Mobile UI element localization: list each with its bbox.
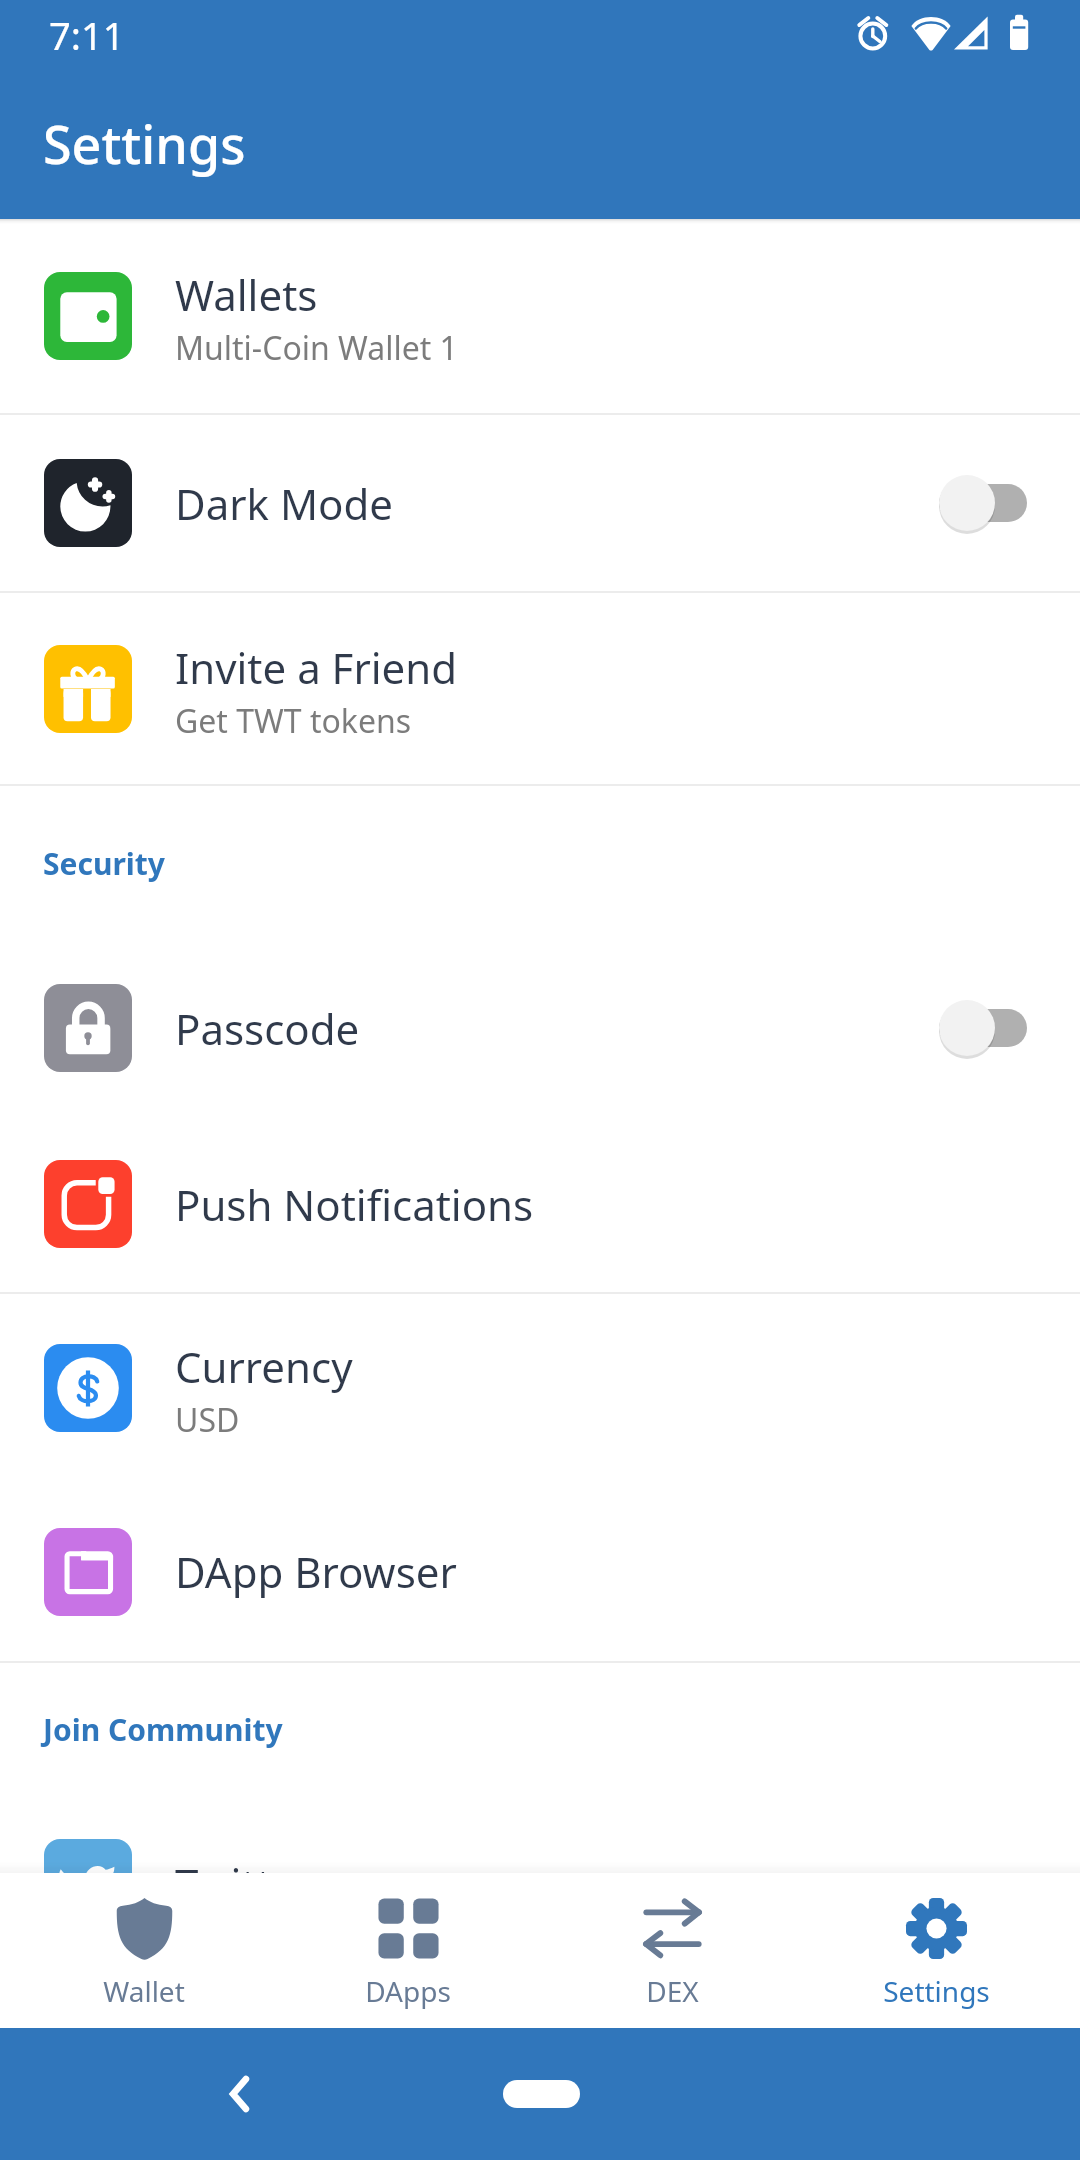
staticText: DEX	[646, 1972, 699, 2010]
button[interactable]: Invite a Friend	[0, 593, 1080, 784]
button[interactable]: Wallet	[12, 1873, 276, 2028]
staticText: DApp Browser	[175, 1543, 457, 1600]
staticText: Multi-Coin Wallet 1	[175, 326, 458, 370]
staticText: Settings	[43, 108, 246, 179]
staticText: USD	[175, 1398, 240, 1442]
staticText: 7:11	[49, 9, 125, 61]
staticText: Passcode	[175, 1000, 360, 1057]
staticText: DApps	[365, 1972, 451, 2010]
staticText: Settings	[883, 1972, 990, 2010]
button[interactable]: Twitter	[0, 1795, 1080, 1971]
button[interactable]: Toggle	[939, 1000, 1027, 1056]
staticText: Twitter	[175, 1855, 313, 1912]
button[interactable]: Push Notifications	[0, 1116, 1080, 1292]
button[interactable]: Toggle	[939, 475, 1027, 531]
button[interactable]: Dark Mode	[0, 415, 1080, 591]
staticText: Get TWT tokens	[175, 699, 412, 743]
button[interactable]: DApp Browser	[0, 1482, 1080, 1661]
button[interactable]: DApps	[276, 1873, 540, 2028]
button[interactable]: DEX	[540, 1873, 804, 2028]
button[interactable]: Passcode	[0, 940, 1080, 1116]
staticText: Security	[43, 843, 165, 884]
button[interactable]: Wallets	[0, 219, 1080, 413]
staticText: Wallet	[103, 1972, 185, 2010]
staticText: Currency	[175, 1338, 353, 1395]
staticText: Push Notifications	[175, 1176, 534, 1233]
staticText: Join Community	[43, 1709, 283, 1750]
staticText: Dark Mode	[175, 475, 393, 532]
button[interactable]: Settings	[804, 1873, 1068, 2028]
staticText: Invite a Friend	[175, 639, 458, 696]
staticText: Wallets	[175, 266, 318, 323]
button[interactable]: Currency	[0, 1294, 1080, 1482]
